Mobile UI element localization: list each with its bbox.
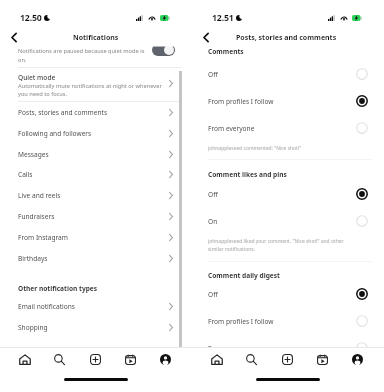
button[interactable]: Birthdays <box>0 248 192 268</box>
staticText: Notifications are paused because quiet m… <box>18 47 146 64</box>
staticText: Live and reels <box>18 191 61 200</box>
button[interactable]: Off <box>192 182 384 206</box>
staticText: Fundraisers <box>18 212 55 221</box>
button[interactable]: Search <box>241 348 262 370</box>
button[interactable]: Back <box>199 31 212 44</box>
button[interactable]: Back <box>7 31 20 44</box>
button[interactable]: Home <box>14 348 35 370</box>
staticText: From profiles I follow <box>208 97 274 106</box>
staticText: 12.50 <box>20 12 42 24</box>
staticText: johnappleseed commented: "Nice shot!" <box>208 145 368 152</box>
button[interactable]: Calls <box>0 164 192 184</box>
button[interactable]: Create <box>277 348 298 370</box>
button[interactable]: Reels <box>312 348 333 370</box>
staticText: 12.51 <box>212 12 234 24</box>
staticText: Comment daily digest <box>208 271 280 280</box>
button[interactable]: Fundraisers <box>0 206 192 226</box>
staticText: Comments <box>208 47 244 56</box>
staticText: Messages <box>18 150 49 159</box>
button[interactable]: Off <box>192 62 384 86</box>
button[interactable]: From everyone <box>192 336 384 360</box>
button[interactable]: Off <box>192 282 384 306</box>
staticText: Off <box>208 190 218 199</box>
button[interactable] <box>152 44 175 56</box>
button[interactable]: On <box>192 209 384 233</box>
button[interactable]: Profile <box>347 348 368 370</box>
button[interactable]: Create <box>85 348 106 370</box>
staticText: Comment likes and pins <box>208 170 287 179</box>
button[interactable]: Posts, stories and comments <box>0 102 192 122</box>
staticText: Off <box>208 290 218 299</box>
staticText: From everyone <box>208 124 255 133</box>
staticText: johnappleseed liked your comment. "Nice … <box>208 238 353 252</box>
button[interactable]: Shopping <box>0 317 192 337</box>
staticText: Calls <box>18 170 33 179</box>
staticText: Off <box>208 70 218 79</box>
button[interactable]: From Instagram <box>0 227 192 247</box>
staticText: Birthdays <box>18 254 48 263</box>
button[interactable]: Profile <box>155 348 176 370</box>
button[interactable]: Quiet mode <box>0 68 192 98</box>
button[interactable]: Live and reels <box>0 185 192 205</box>
button[interactable]: Following and followers <box>0 123 192 143</box>
button[interactable]: Search <box>49 348 70 370</box>
button[interactable]: From profiles I follow <box>192 309 384 333</box>
staticText: Quiet mode <box>18 73 56 82</box>
staticText: On <box>208 217 218 226</box>
staticText: Shopping <box>18 323 48 332</box>
staticText: Other notification types <box>18 284 98 293</box>
staticText: Following and followers <box>18 129 92 138</box>
staticText: From Instagram <box>18 233 68 242</box>
staticText: Posts, stories and comments <box>18 108 108 117</box>
button[interactable]: Messages <box>0 144 192 164</box>
button[interactable]: From everyone <box>192 116 384 140</box>
staticText: From everyone <box>208 344 255 353</box>
button[interactable]: Reels <box>120 348 141 370</box>
button[interactable]: From profiles I follow <box>192 89 384 113</box>
staticText: Posts, stories and comments <box>236 33 337 43</box>
staticText: From profiles I follow <box>208 317 274 326</box>
staticText: Automatically mute notifications at nigh… <box>18 82 165 98</box>
staticText: Email notifications <box>18 302 75 311</box>
staticText: Notifications <box>73 33 119 43</box>
button[interactable]: Home <box>206 348 227 370</box>
button[interactable]: Email notifications <box>0 296 192 316</box>
